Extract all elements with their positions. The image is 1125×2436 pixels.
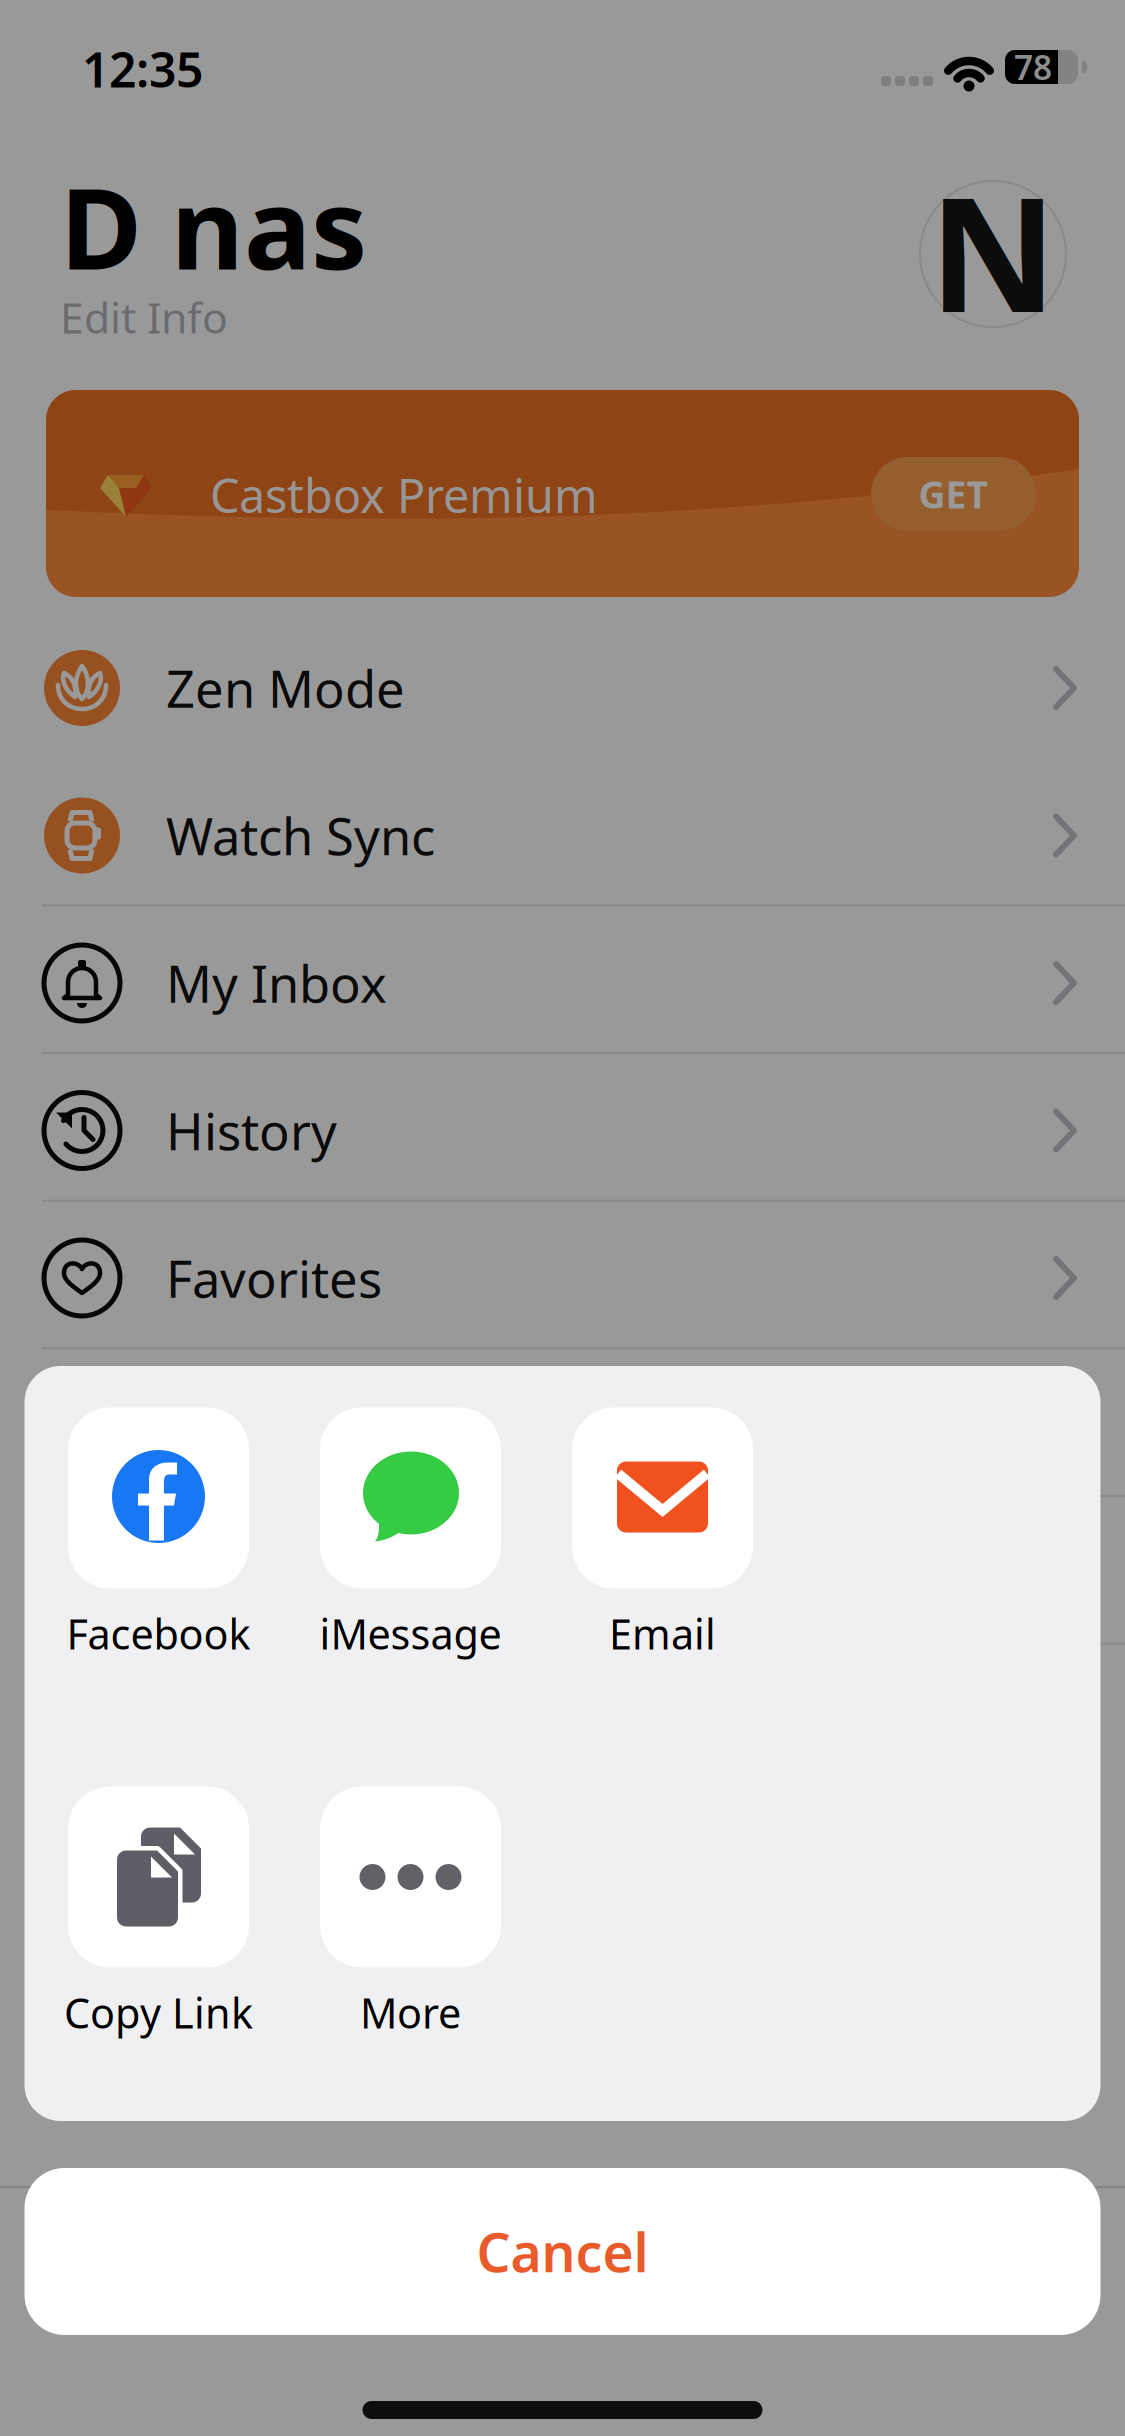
staticText: iMessage xyxy=(319,1606,501,1661)
staticText: Zen Mode xyxy=(166,654,405,722)
staticText: Edit Info xyxy=(60,289,228,345)
button[interactable]: Profile xyxy=(920,181,1066,327)
staticText: 12:35 xyxy=(82,37,203,101)
staticText: More xyxy=(360,1985,461,2040)
staticText: History xyxy=(166,1097,337,1164)
staticText: Favorites xyxy=(166,1244,382,1312)
button[interactable]: Watch Sync xyxy=(0,762,1125,909)
button[interactable]: Cancel xyxy=(24,2168,1100,2335)
button[interactable]: History xyxy=(0,1057,1125,1204)
button[interactable]: Edit Info xyxy=(60,287,360,347)
staticText: Copy Link xyxy=(64,1985,253,2040)
button[interactable]: More xyxy=(284,1786,536,2037)
staticText: 78 xyxy=(1014,45,1052,89)
button[interactable]: Favorites xyxy=(0,1204,1125,1351)
staticText: Email xyxy=(609,1606,716,1661)
staticText: Castbox Premium xyxy=(210,464,598,526)
button[interactable]: Zen Mode xyxy=(0,614,1125,761)
staticText: Facebook xyxy=(66,1606,250,1661)
staticText: My Inbox xyxy=(166,949,387,1017)
button[interactable]: iMessage xyxy=(284,1407,536,1658)
button[interactable]: Facebook xyxy=(32,1407,284,1658)
button[interactable]: Copy Link xyxy=(32,1786,284,2037)
button[interactable]: Email xyxy=(536,1407,788,1658)
staticText: D nas xyxy=(60,152,367,300)
staticText: Cancel xyxy=(476,2216,648,2287)
button[interactable]: My Inbox xyxy=(0,909,1125,1056)
button[interactable]: Castbox Premium xyxy=(46,390,1079,597)
staticText: GET xyxy=(918,469,988,519)
staticText: Watch Sync xyxy=(166,802,435,869)
staticText: N xyxy=(929,146,1057,355)
